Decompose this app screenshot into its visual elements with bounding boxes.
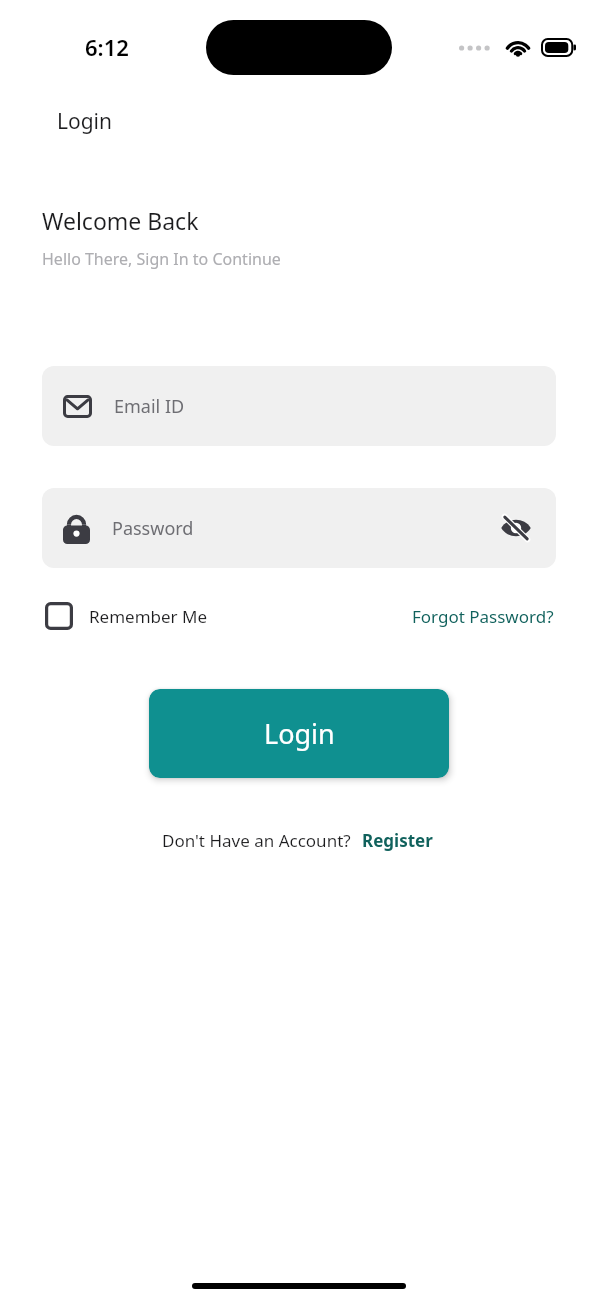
staticText: Welcome Back [42,205,199,236]
staticText: Hello There, Sign In to Continue [42,248,281,270]
button[interactable]: Register [359,825,436,856]
staticText: Password [112,516,496,541]
button[interactable]: Email ID [42,366,556,446]
staticText: Remember Me [89,605,208,628]
staticText: Register [362,829,433,852]
staticText: Forgot Password? [412,605,554,628]
button[interactable]: Forgot Password? [410,599,556,634]
button[interactable]: Remember Me [42,595,210,637]
button[interactable]: Password [42,488,556,568]
staticText: Don't Have an Account? [162,829,351,852]
button[interactable]: Login [149,689,449,778]
staticText: 6:12 [85,32,129,62]
staticText: Login [264,715,335,752]
staticText: Email ID [114,394,185,419]
staticText: Login [57,107,113,136]
button[interactable]: Show password [496,508,536,548]
